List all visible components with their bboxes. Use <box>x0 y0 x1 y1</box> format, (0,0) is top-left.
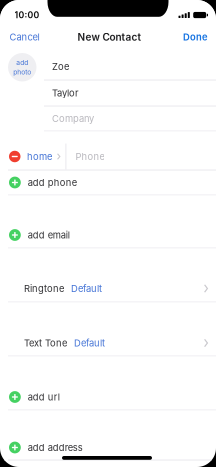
button[interactable]: Text Tone <box>0 330 216 355</box>
button[interactable]: add url <box>0 384 216 409</box>
button[interactable]: Company <box>0 106 216 130</box>
button[interactable]: home <box>0 143 216 169</box>
staticText: Zoe <box>52 61 69 72</box>
staticText: Default <box>74 337 105 349</box>
button[interactable]: add phone <box>0 170 216 194</box>
button[interactable]: Taylor <box>0 80 216 105</box>
button[interactable]: add email <box>0 222 216 247</box>
button[interactable]: add address <box>0 435 216 459</box>
staticText: Taylor <box>52 87 79 99</box>
staticText: Ringtone <box>24 283 64 294</box>
staticText: add <box>16 58 28 66</box>
staticText: Cancel <box>9 31 39 43</box>
button[interactable]: Ringtone <box>0 275 216 301</box>
button[interactable]: Zoe <box>0 53 216 79</box>
button[interactable]: Cancel <box>0 26 49 48</box>
staticText: New Contact <box>77 31 141 43</box>
staticText: Text Tone <box>24 337 67 349</box>
staticText: add url <box>28 391 60 403</box>
staticText: Company <box>52 113 94 124</box>
staticText: Phone <box>75 151 104 162</box>
staticText: add email <box>28 229 70 241</box>
staticText: Default <box>71 283 102 294</box>
staticText: photo <box>13 68 31 76</box>
button[interactable]: Add Photo <box>8 53 36 81</box>
staticText: home <box>27 151 52 162</box>
staticText: 10:00 <box>14 10 39 20</box>
staticText: add phone <box>28 177 77 188</box>
button[interactable]: Done <box>175 26 216 48</box>
staticText: add address <box>28 442 83 453</box>
staticText: Done <box>183 31 208 43</box>
